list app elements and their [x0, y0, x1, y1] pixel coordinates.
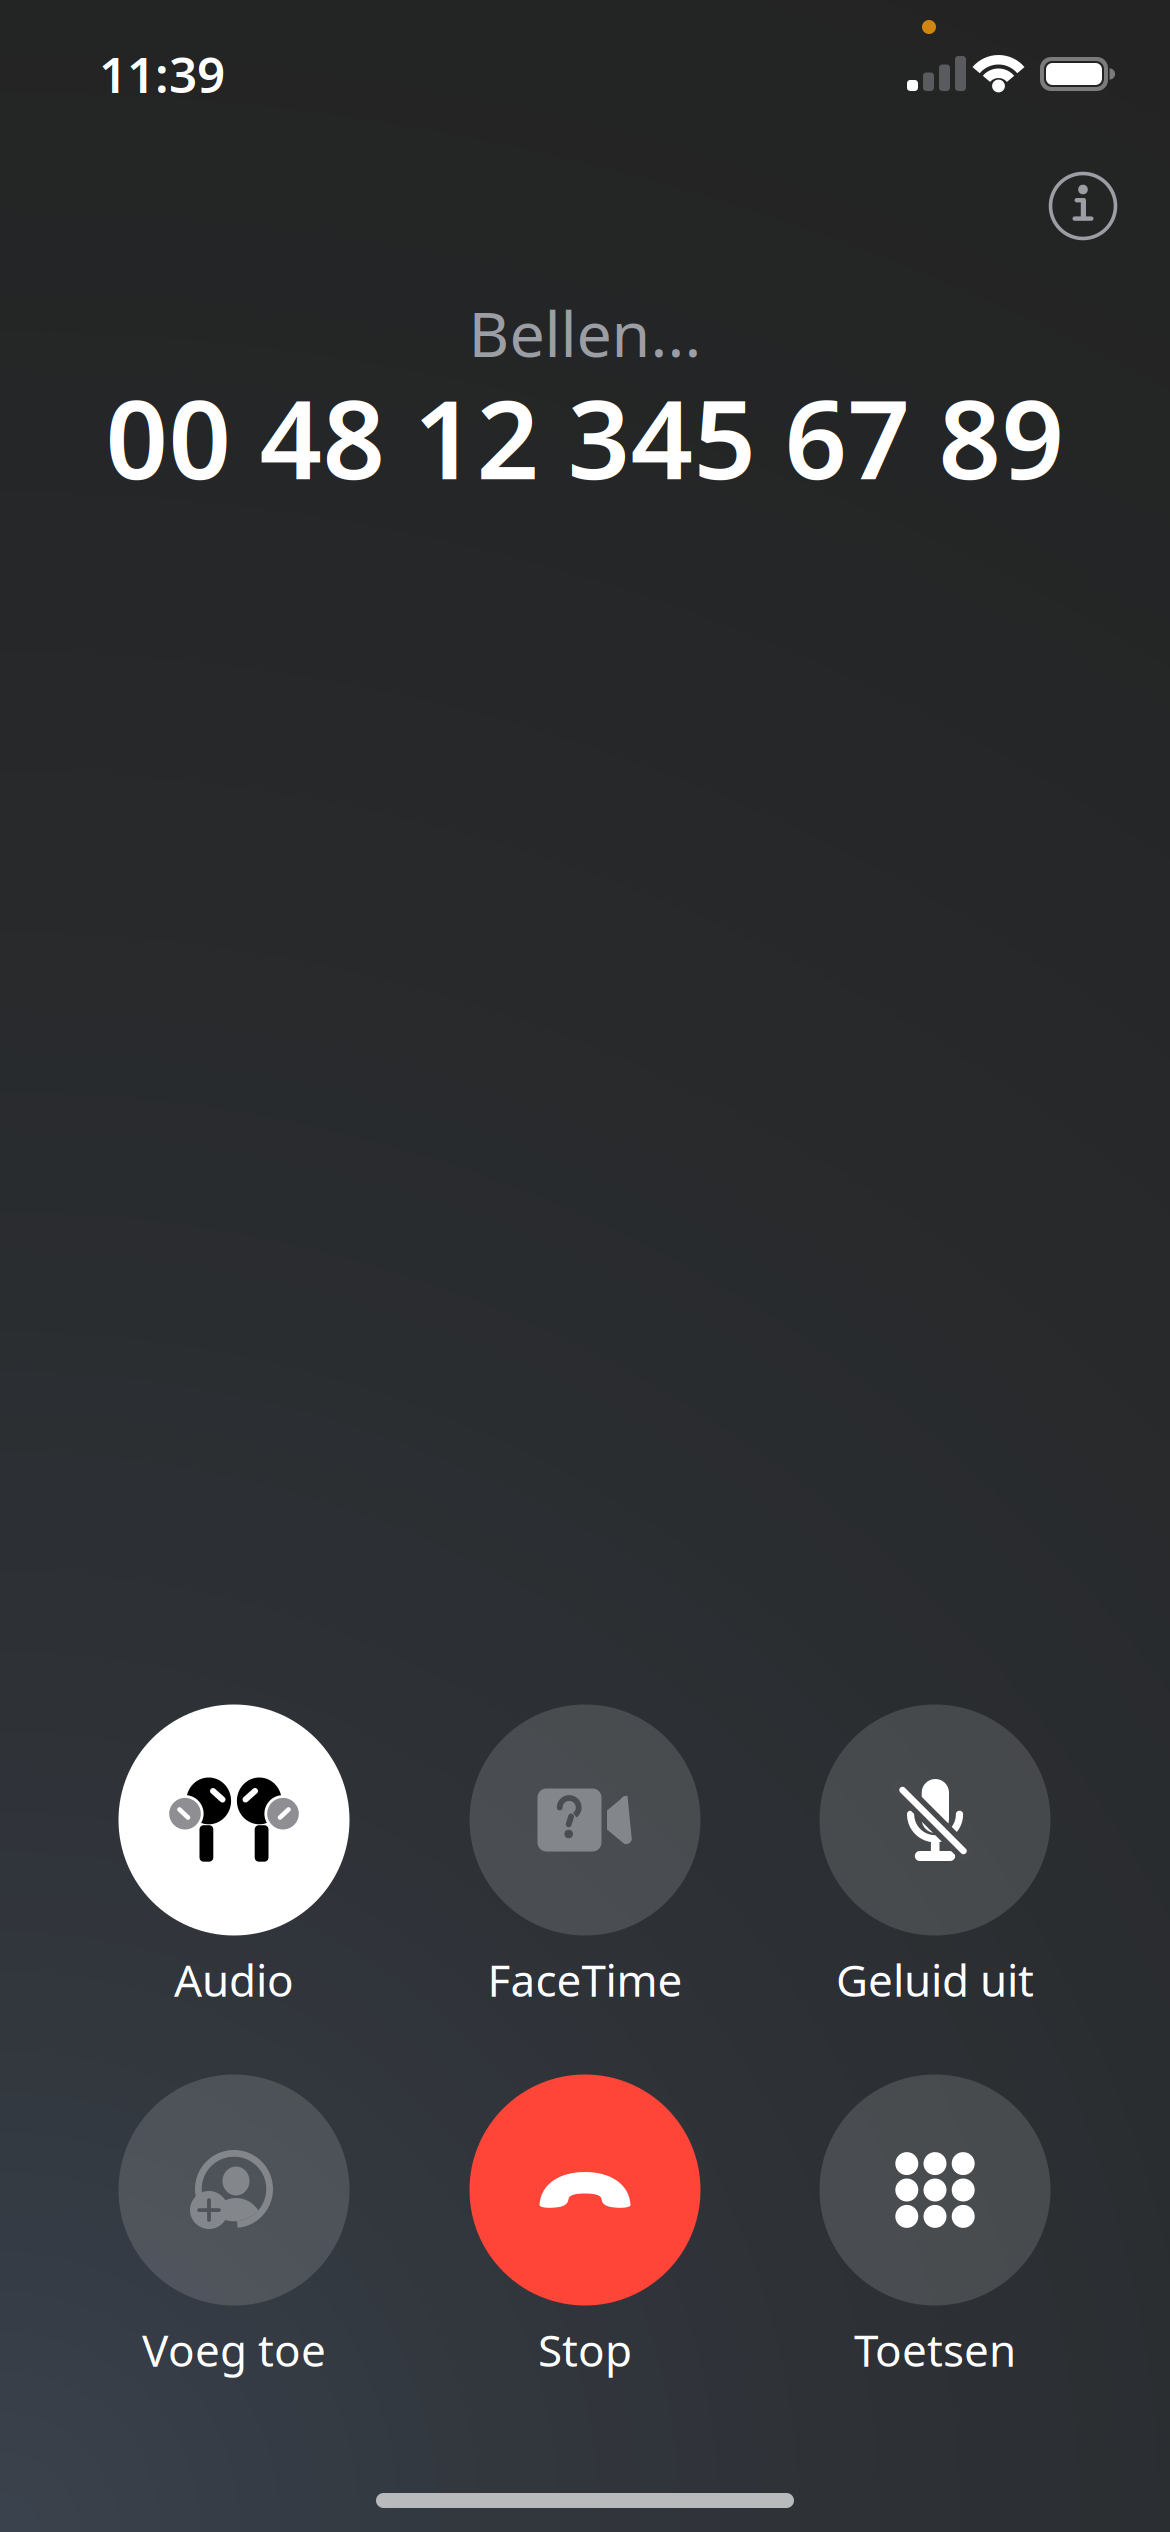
button[interactable]: Mute [770, 1704, 1100, 2004]
button[interactable]: FaceTime, unavailable [420, 1704, 750, 2004]
button[interactable]: Keypad [770, 2074, 1100, 2374]
staticText: Voeg toe [142, 2320, 326, 2379]
staticText: Stop [538, 2320, 632, 2379]
staticText: Bellen... [468, 291, 701, 374]
staticText: Geluid uit [836, 1950, 1034, 2009]
staticText: Audio [174, 1950, 294, 2009]
button[interactable]: End call [420, 2074, 750, 2374]
staticText: Toetsen [854, 2320, 1016, 2379]
button[interactable]: Audio route: AirPods [69, 1704, 399, 2004]
staticText: 00 48 12 345 67 89 [105, 364, 1064, 509]
staticText: FaceTime [487, 1950, 682, 2009]
button[interactable]: Add call [69, 2074, 399, 2374]
button[interactable]: Call details [1029, 152, 1137, 260]
staticText: 11:39 [99, 41, 225, 106]
